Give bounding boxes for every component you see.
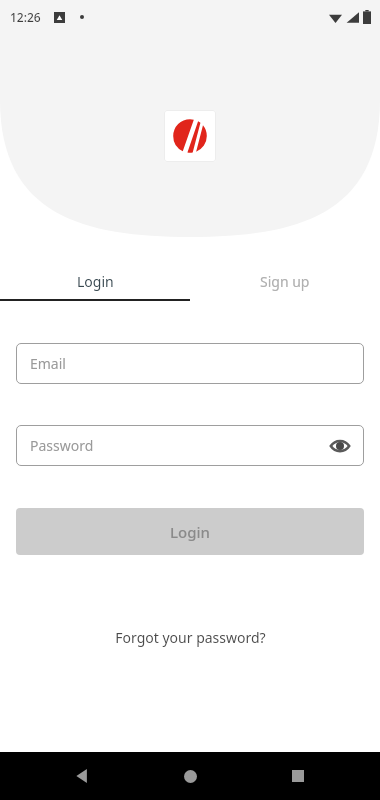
button[interactable]: Recent apps bbox=[278, 756, 318, 796]
button[interactable]: Sign up bbox=[190, 262, 380, 300]
button[interactable]: Forgot your password? bbox=[0, 622, 380, 652]
button[interactable]: Show password bbox=[324, 430, 356, 462]
staticText: Sign up bbox=[260, 272, 310, 291]
button[interactable]: Back bbox=[62, 756, 102, 796]
button[interactable]: Home bbox=[170, 756, 210, 796]
staticText: Login bbox=[77, 272, 114, 291]
staticText: Login bbox=[170, 522, 210, 542]
staticText: Password bbox=[30, 436, 94, 455]
staticText: Email bbox=[30, 354, 66, 373]
button[interactable]: Login bbox=[0, 262, 190, 300]
staticText: Forgot your password? bbox=[115, 628, 266, 647]
button[interactable]: Email bbox=[16, 343, 364, 384]
staticText: 12:26 bbox=[10, 9, 41, 25]
button[interactable]: Login bbox=[16, 508, 364, 555]
button[interactable]: Password bbox=[16, 425, 364, 466]
